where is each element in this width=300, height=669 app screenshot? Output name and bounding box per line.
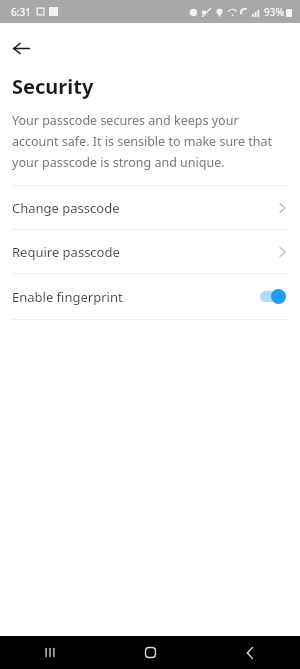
staticText: Require passcode (12, 243, 279, 261)
button[interactable]: Recent apps (0, 646, 100, 659)
staticText: 6:31 (11, 5, 31, 19)
staticText: Your passcode secures and keeps your acc… (12, 112, 286, 171)
staticText: Enable fingerprint (12, 288, 260, 306)
button[interactable]: Back (6, 33, 36, 63)
button[interactable]: Home (100, 646, 200, 659)
staticText: 93% (264, 5, 284, 19)
staticText: Security (12, 73, 94, 100)
staticText: Change passcode (12, 199, 279, 217)
button[interactable]: Enable fingerprint (0, 274, 300, 319)
button[interactable]: Back (200, 646, 300, 660)
button[interactable]: Require passcode (0, 230, 300, 273)
button[interactable]: Change passcode (0, 186, 300, 229)
